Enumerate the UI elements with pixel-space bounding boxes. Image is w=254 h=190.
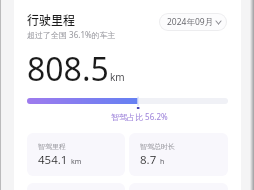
staticText: 智驾里程 bbox=[38, 142, 66, 151]
button[interactable]: 智驾里程 bbox=[27, 133, 125, 176]
other: Change month bbox=[216, 21, 221, 24]
staticText: h bbox=[160, 157, 165, 167]
staticText: km bbox=[110, 70, 125, 84]
staticText: 超过了全国 36.1%的车主 bbox=[27, 29, 116, 40]
button[interactable]: 智驾总时长 bbox=[129, 133, 228, 176]
staticText: 智驾占比 56.2% bbox=[111, 111, 168, 122]
staticText: km bbox=[71, 157, 82, 167]
staticText: 454.1 bbox=[38, 152, 68, 168]
staticText: 808.5 bbox=[27, 47, 109, 91]
staticText: 智驾总时长 bbox=[140, 142, 175, 151]
staticText: 8.7 bbox=[140, 152, 157, 168]
staticText: 2024年09月 bbox=[167, 16, 214, 28]
staticText: 行驶里程 bbox=[27, 11, 76, 28]
button[interactable]: 2024年09月 bbox=[160, 14, 226, 30]
